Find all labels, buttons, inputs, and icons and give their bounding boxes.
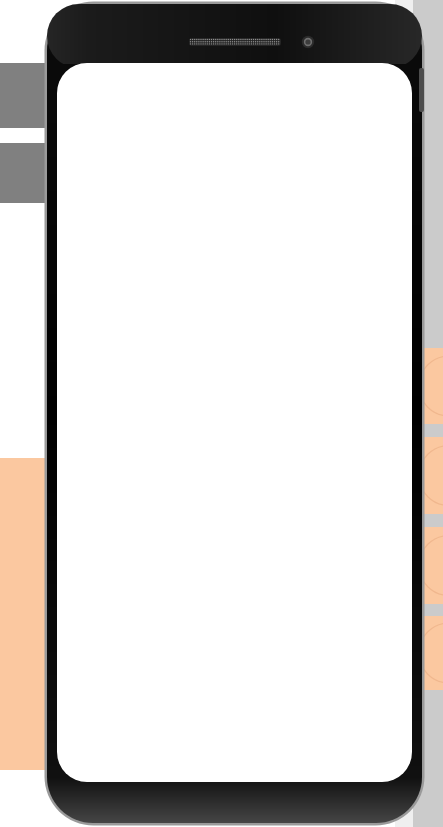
button[interactable]: Phone screen bbox=[57, 63, 412, 782]
